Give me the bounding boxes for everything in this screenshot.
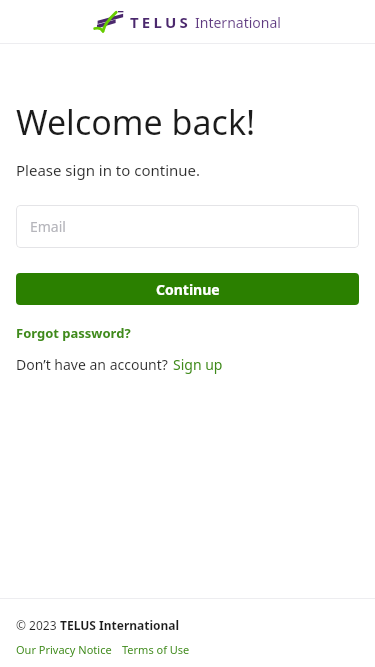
staticText: Welcome back! <box>16 99 256 145</box>
staticText: Terms of Use <box>122 642 190 657</box>
button[interactable]: Our Privacy Notice <box>16 642 112 657</box>
other: TELUS International <box>94 11 281 33</box>
button[interactable]: Continue <box>16 273 359 305</box>
staticText: Sign up <box>173 355 223 374</box>
button[interactable]: Forgot password? <box>16 322 131 344</box>
staticText: Forgot password? <box>16 324 131 342</box>
staticText: © 2023 <box>16 617 60 633</box>
staticText: Don’t have an account? <box>16 355 168 374</box>
button[interactable]: Sign up <box>173 353 223 376</box>
staticText: International <box>195 13 281 32</box>
staticText: Our Privacy Notice <box>16 642 112 657</box>
staticText: Please sign in to continue. <box>16 160 201 180</box>
button[interactable]: Email <box>16 205 359 248</box>
staticText: TELUS International <box>60 617 180 633</box>
staticText: Continue <box>156 280 220 299</box>
staticText: Email <box>30 217 66 236</box>
staticText: TELUS <box>130 12 191 32</box>
button[interactable]: Terms of Use <box>122 642 190 657</box>
